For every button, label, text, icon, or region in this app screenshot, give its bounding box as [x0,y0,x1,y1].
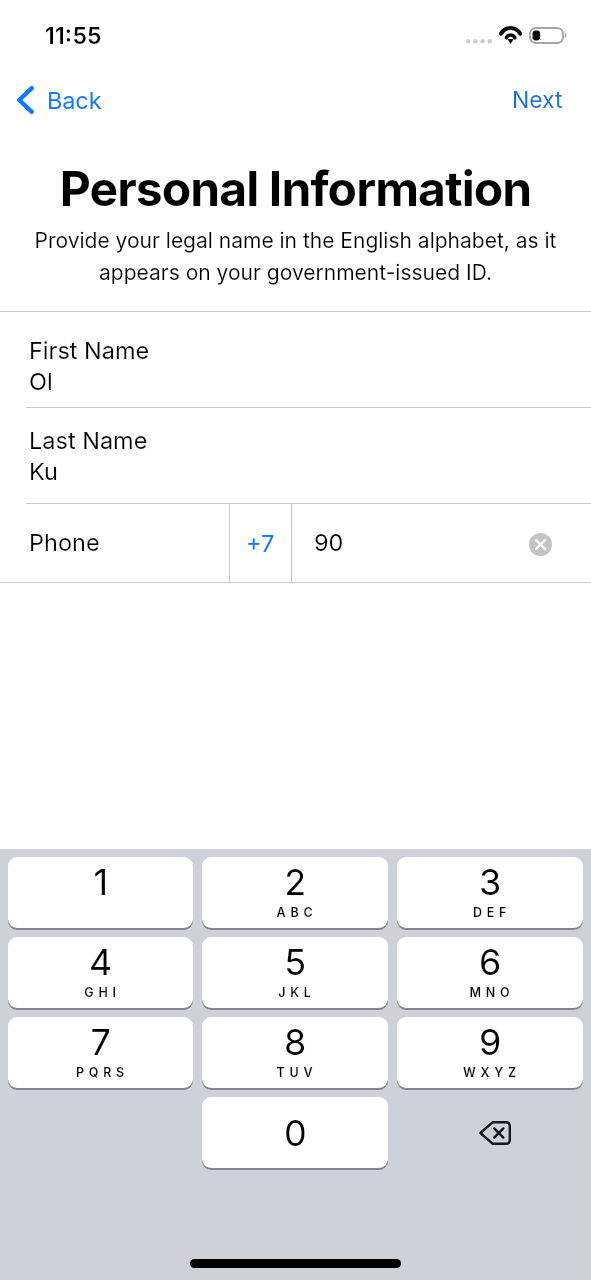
button[interactable]: +7 [230,504,291,582]
staticText: 90 [314,528,344,556]
staticText: 7 [8,1020,193,1064]
staticText: Ku [29,457,58,485]
button[interactable]: 2 [202,857,388,928]
staticText: Phone [29,528,100,556]
button[interactable]: 9 [397,1017,583,1088]
button[interactable]: 5 [202,937,388,1008]
staticText: G H I [8,985,193,1000]
staticText: P Q R S [8,1065,193,1080]
staticText: Ol [29,367,53,395]
button[interactable]: Backspace [397,1097,583,1168]
staticText: Next [512,86,563,114]
staticText: Last Name [29,426,148,454]
button[interactable]: 1 [8,857,193,928]
button[interactable]: 4 [8,937,193,1008]
staticText: 5 [202,940,388,984]
staticText: 11:55 [45,22,102,50]
staticText: A B C [202,905,388,920]
staticText: First Name [29,336,150,364]
button[interactable]: 8 [202,1017,388,1088]
button[interactable]: 7 [8,1017,193,1088]
staticText: 0 [284,1111,307,1155]
staticText: Provide your legal name in the English a… [6,228,585,285]
staticText: 4 [8,940,193,984]
button[interactable]: Clear phone number [529,533,552,556]
staticText: 1 [8,860,193,904]
staticText: Back [47,86,102,114]
button[interactable]: Next [500,80,575,120]
button[interactable]: Phone [0,504,229,582]
button[interactable]: 3 [397,857,583,928]
staticText: 2 [202,860,388,904]
staticText: Personal Information [0,159,591,217]
staticText: T U V [202,1065,388,1080]
staticText: 6 [397,940,583,984]
button[interactable]: 6 [397,937,583,1008]
staticText: W X Y Z [397,1065,583,1080]
staticText: M N O [397,985,583,1000]
staticText: D E F [397,905,583,920]
staticText: 8 [202,1020,388,1064]
button[interactable]: Back [7,82,112,118]
button[interactable]: First Name [0,312,591,407]
staticText: J K L [202,985,388,1000]
button[interactable]: 0 [202,1097,388,1168]
staticText: +7 [246,529,275,557]
staticText: 3 [397,860,583,904]
staticText: 9 [397,1020,583,1064]
button[interactable]: Last Name [0,408,591,503]
